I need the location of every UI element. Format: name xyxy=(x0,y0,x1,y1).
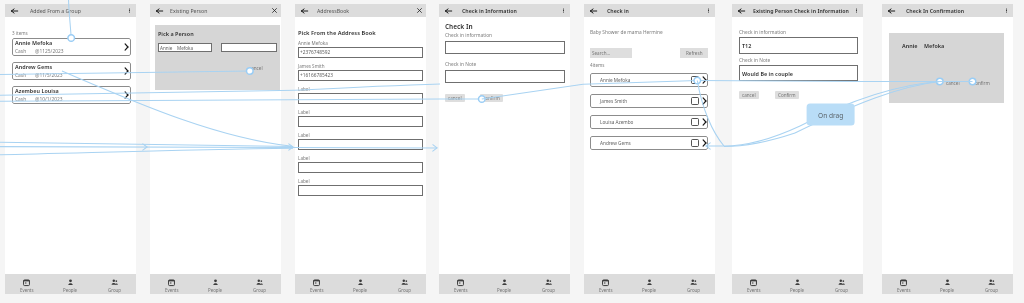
button[interactable]: People xyxy=(925,274,969,294)
button[interactable] xyxy=(298,116,423,127)
button[interactable] xyxy=(445,70,565,83)
button[interactable]: James Smith xyxy=(590,94,708,108)
button[interactable]: Back xyxy=(738,7,745,15)
button[interactable]: Group xyxy=(671,274,715,294)
button[interactable]: Annie Mefoka xyxy=(12,38,131,56)
button[interactable]: cancel xyxy=(946,80,960,86)
staticText: Label xyxy=(298,155,310,161)
button[interactable]: Events xyxy=(882,274,925,294)
staticText: Check in information xyxy=(445,32,493,39)
button[interactable]: People xyxy=(627,274,671,294)
staticText: @11/5/2023 xyxy=(35,72,63,79)
staticText: Label xyxy=(298,178,310,184)
button[interactable] xyxy=(221,43,277,52)
staticText: Mefoka xyxy=(177,45,194,51)
staticText: Group xyxy=(253,287,266,293)
button[interactable]: People xyxy=(193,274,237,294)
staticText: Group xyxy=(398,287,411,293)
button[interactable]: Back xyxy=(156,7,163,15)
button[interactable]: confirm xyxy=(973,80,990,86)
button[interactable]: People xyxy=(48,274,92,294)
button[interactable]: People xyxy=(482,274,526,294)
button[interactable]: Events xyxy=(295,274,338,294)
staticText: Andrew Gems xyxy=(600,140,631,146)
button[interactable]: Events xyxy=(584,274,627,294)
button[interactable]: Annie Mefoka xyxy=(590,73,708,87)
button[interactable]: Back xyxy=(888,7,895,15)
staticText: Mefoka xyxy=(924,42,945,49)
button[interactable] xyxy=(298,185,423,196)
button[interactable]: cancel xyxy=(739,91,759,99)
button[interactable]: Events xyxy=(732,274,775,294)
button[interactable]: cancel xyxy=(445,94,465,102)
button[interactable]: People xyxy=(775,274,819,294)
button[interactable]: More options xyxy=(126,7,133,14)
staticText: +16166785423 xyxy=(300,72,333,79)
staticText: T12 xyxy=(742,42,752,49)
staticText: Events xyxy=(454,287,468,293)
button[interactable]: More options xyxy=(560,7,567,14)
staticText: Search... xyxy=(592,50,611,56)
button[interactable]: Andrew Gems xyxy=(12,62,131,80)
button[interactable]: Would Be in couple xyxy=(739,65,858,81)
button[interactable]: Louisa Azembo xyxy=(590,115,708,129)
staticText: Check In xyxy=(445,22,473,31)
staticText: AddressBook xyxy=(317,7,350,14)
button[interactable]: +2376748592 xyxy=(298,47,423,58)
button[interactable]: More options xyxy=(705,7,712,14)
staticText: Check In Confirmation xyxy=(906,7,965,14)
staticText: Annie Mefoka xyxy=(600,77,631,83)
button[interactable]: Events xyxy=(150,274,193,294)
staticText: Check in Information xyxy=(462,7,517,14)
staticText: Label xyxy=(298,86,310,92)
button[interactable]: Back xyxy=(445,7,452,15)
staticText: +2376748592 xyxy=(300,49,331,56)
button[interactable]: Annie xyxy=(158,43,212,52)
button[interactable]: Azembeu Louisa xyxy=(12,86,131,104)
staticText: Annie xyxy=(160,45,173,51)
button[interactable] xyxy=(298,93,423,104)
button[interactable] xyxy=(445,41,565,54)
button[interactable]: confirm xyxy=(480,94,503,102)
staticText: Existing Person xyxy=(170,7,208,14)
staticText: @1125/2023 xyxy=(35,48,64,55)
button[interactable]: Group xyxy=(92,274,136,294)
button[interactable] xyxy=(298,139,423,150)
staticText: People xyxy=(940,287,955,293)
button[interactable]: Andrew Gems xyxy=(590,136,708,150)
button[interactable]: Back xyxy=(301,7,308,15)
staticText: Events xyxy=(20,287,34,293)
button[interactable]: Group xyxy=(237,274,281,294)
staticText: Added From a Group xyxy=(30,7,81,14)
button[interactable] xyxy=(298,162,423,173)
button[interactable]: Group xyxy=(526,274,570,294)
staticText: 4items xyxy=(590,62,605,68)
button[interactable]: Back xyxy=(590,7,597,15)
button[interactable]: Events xyxy=(5,274,48,294)
staticText: James Smith xyxy=(298,63,325,69)
button[interactable]: T12 xyxy=(739,37,858,54)
button[interactable]: Close xyxy=(416,7,423,14)
button[interactable]: Group xyxy=(819,274,863,294)
button[interactable]: Group xyxy=(382,274,426,294)
staticText: Azembeu Louisa xyxy=(15,87,59,94)
button[interactable]: cancel xyxy=(249,65,263,71)
button[interactable]: Group xyxy=(969,274,1013,294)
button[interactable]: Refresh xyxy=(680,48,708,58)
staticText: People xyxy=(642,287,657,293)
button[interactable]: Events xyxy=(439,274,482,294)
staticText: Cash xyxy=(15,96,27,103)
staticText: On drag xyxy=(818,111,844,120)
button[interactable]: Search... xyxy=(590,48,632,58)
staticText: Pick From the Address Book xyxy=(298,29,376,37)
button[interactable]: More options xyxy=(853,7,860,14)
button[interactable]: People xyxy=(338,274,382,294)
button[interactable]: Close xyxy=(271,7,278,14)
button[interactable]: Back xyxy=(11,7,18,15)
staticText: Andrew Gems xyxy=(15,63,53,70)
staticText: Check in Note xyxy=(739,57,771,64)
staticText: Events xyxy=(897,287,911,293)
button[interactable]: Confirm xyxy=(775,91,799,99)
button[interactable]: +16166785423 xyxy=(298,70,423,81)
button[interactable]: More options xyxy=(1003,7,1010,14)
